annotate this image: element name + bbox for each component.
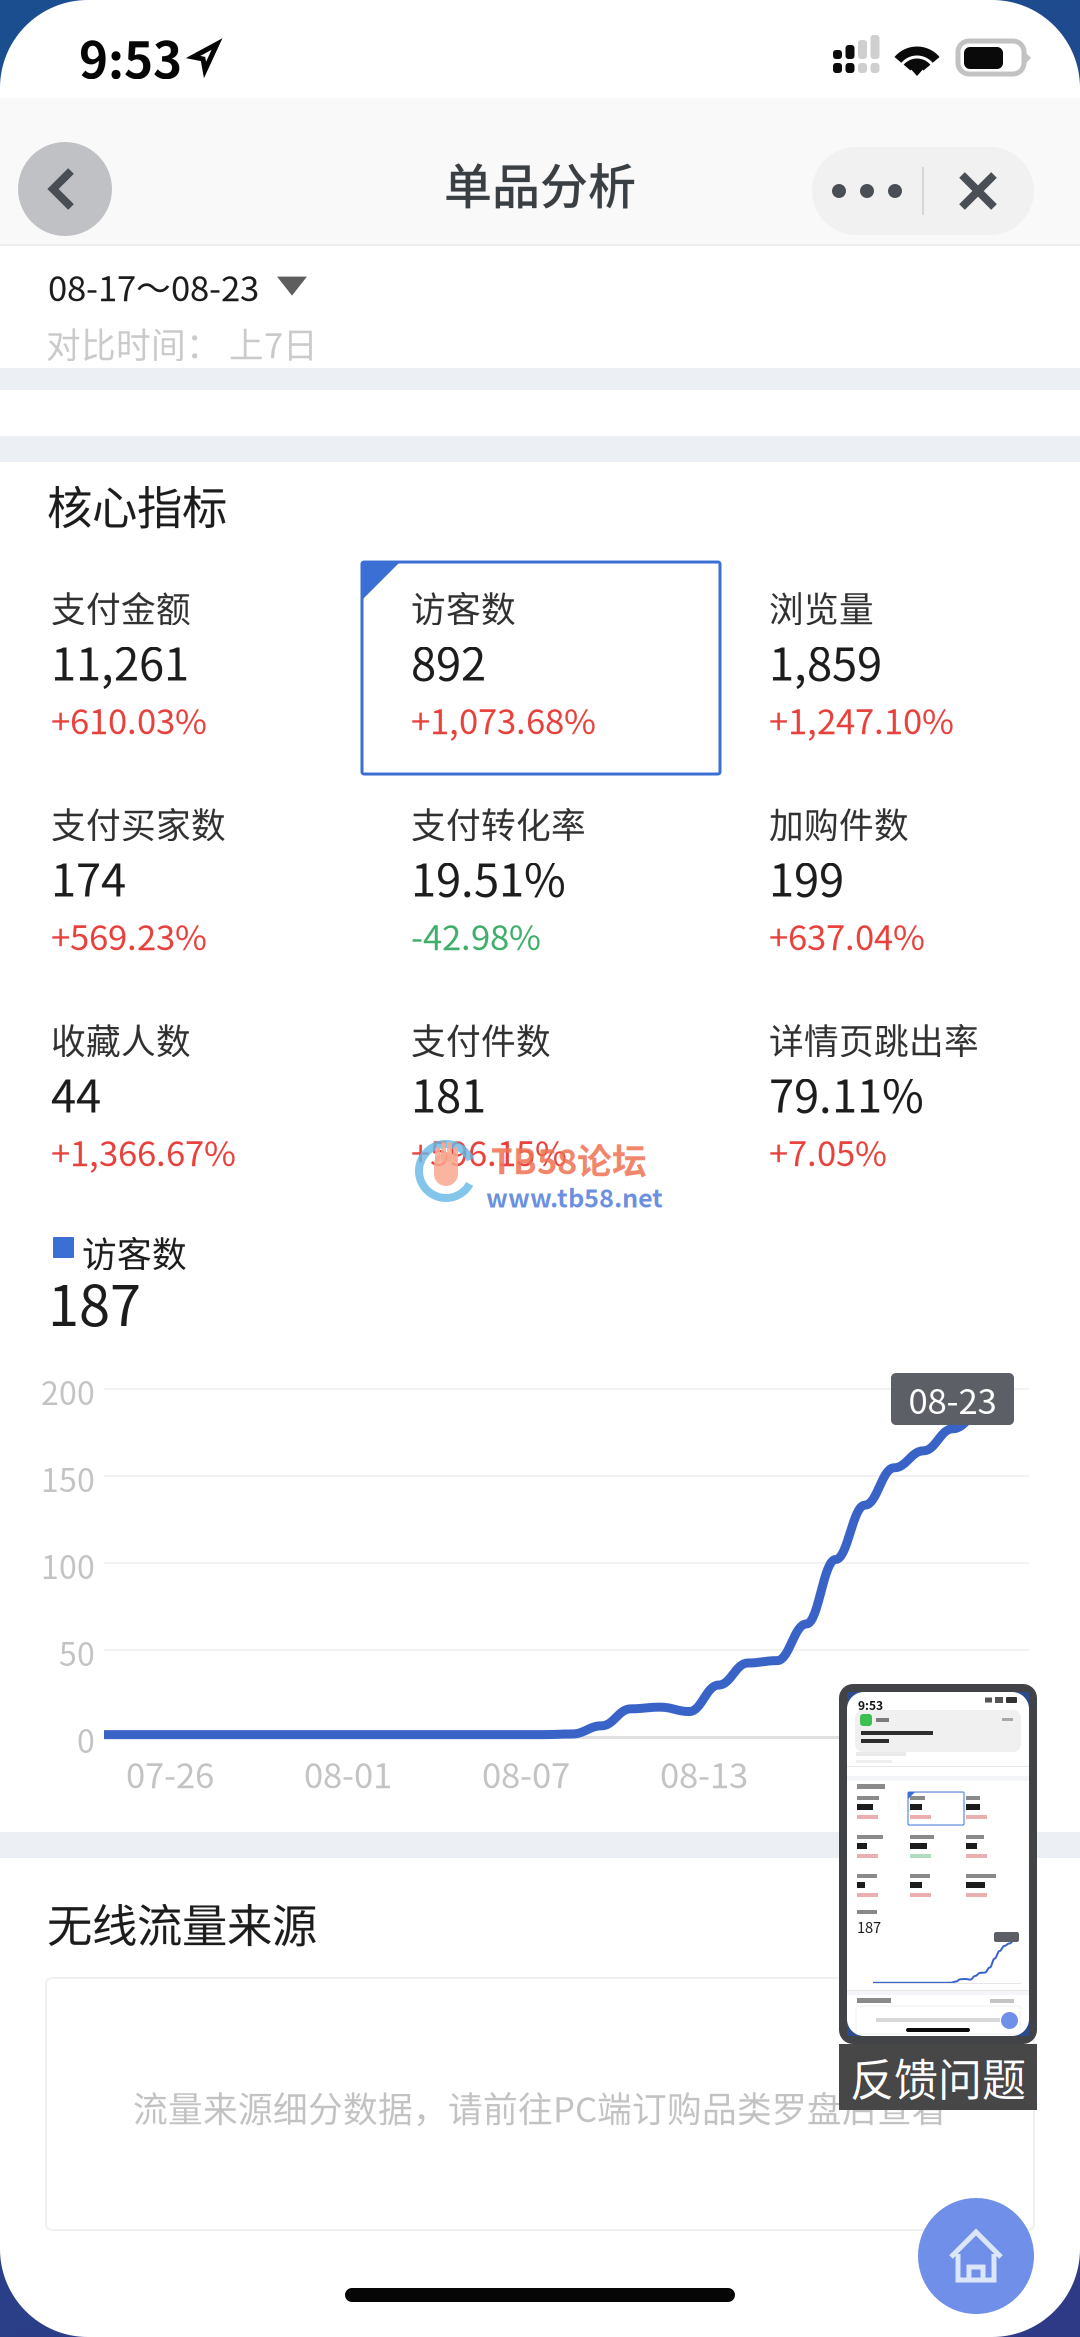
button[interactable]: 加购件数 [769,808,1080,978]
button[interactable]: Back [18,142,112,236]
staticText: 07-26 [126,1748,214,1798]
button[interactable]: 详情页跳出率 [769,1024,1080,1194]
staticText: 08-07 [482,1748,570,1798]
button[interactable]: 访客数 [411,592,741,762]
staticText: 08-23 [908,1374,996,1424]
staticText: www.tb58.net [486,1178,663,1215]
staticText: 9:53 [79,21,182,92]
staticText: +610.03% [51,694,207,744]
staticText: 1,859 [769,628,882,694]
staticText: 100 [41,1542,95,1588]
button[interactable]: Home [918,2198,1034,2314]
button[interactable]: 支付金额 [51,592,381,762]
staticText: 无线流量来源 [47,1890,317,1956]
staticText: +569.23% [51,910,207,960]
staticText: 150 [41,1455,95,1501]
staticText: 187 [857,1916,881,1937]
staticText: 浏览量 [769,582,874,632]
button[interactable]: 访客数 [362,562,720,774]
staticText: 200 [41,1368,95,1414]
staticText: 08-13 [660,1748,748,1798]
staticText: 892 [411,628,486,694]
staticText: 支付件数 [411,1014,551,1064]
staticText: 访客数 [82,1227,187,1277]
staticText: 08-19 [838,1748,926,1798]
button[interactable]: 支付件数 [411,1024,741,1194]
staticText: 181 [411,1060,486,1126]
staticText: -42.98% [411,910,541,960]
staticText: 对比时间： 上7日 [46,318,318,368]
staticText: TB58论坛 [491,1134,647,1184]
staticText: 50 [59,1629,95,1675]
button[interactable]: 收藏人数 [51,1024,381,1194]
button[interactable]: 08-17～08-23 [48,261,307,311]
staticText: 9:53 [858,1696,883,1713]
staticText: 199 [769,844,844,910]
staticText: 08-01 [304,1748,392,1798]
staticText: 44 [51,1060,101,1126]
staticText: 详情页跳出率 [769,1014,979,1064]
button[interactable]: Close [922,147,1034,235]
staticText: +1,366.67% [51,1126,236,1176]
button[interactable]: More [812,147,922,235]
staticText: +637.04% [769,910,925,960]
staticText: 08-17～08-23 [48,261,259,311]
staticText: 单品分析 [444,148,636,217]
staticText: 支付转化率 [411,798,586,848]
staticText: 79.11% [769,1060,924,1126]
staticText: 加购件数 [769,798,909,848]
staticText: 支付买家数 [51,798,226,848]
staticText: +1,073.68% [411,694,596,744]
staticText: 收藏人数 [51,1014,191,1064]
staticText: 反馈问题 [850,2045,1026,2109]
staticText: 支付金额 [51,582,191,632]
button[interactable]: 支付买家数 [51,808,381,978]
staticText: 0 [77,1716,95,1762]
staticText: +7.05% [769,1126,887,1176]
staticText: +1,247.10% [769,694,954,744]
staticText: +596.15% [411,1126,567,1176]
staticText: 核心指标 [47,472,227,538]
staticText: 187 [48,1261,141,1342]
staticText: 174 [51,844,126,910]
staticText: 11,261 [51,628,189,694]
staticText: 访客数 [411,582,516,632]
button[interactable]: 支付转化率 [411,808,741,978]
staticText: 流量来源细分数据，请前往PC端订购品类罗盘后查看 [133,2082,947,2132]
button[interactable]: 浏览量 [769,592,1080,762]
staticText: 19.51% [411,844,566,910]
